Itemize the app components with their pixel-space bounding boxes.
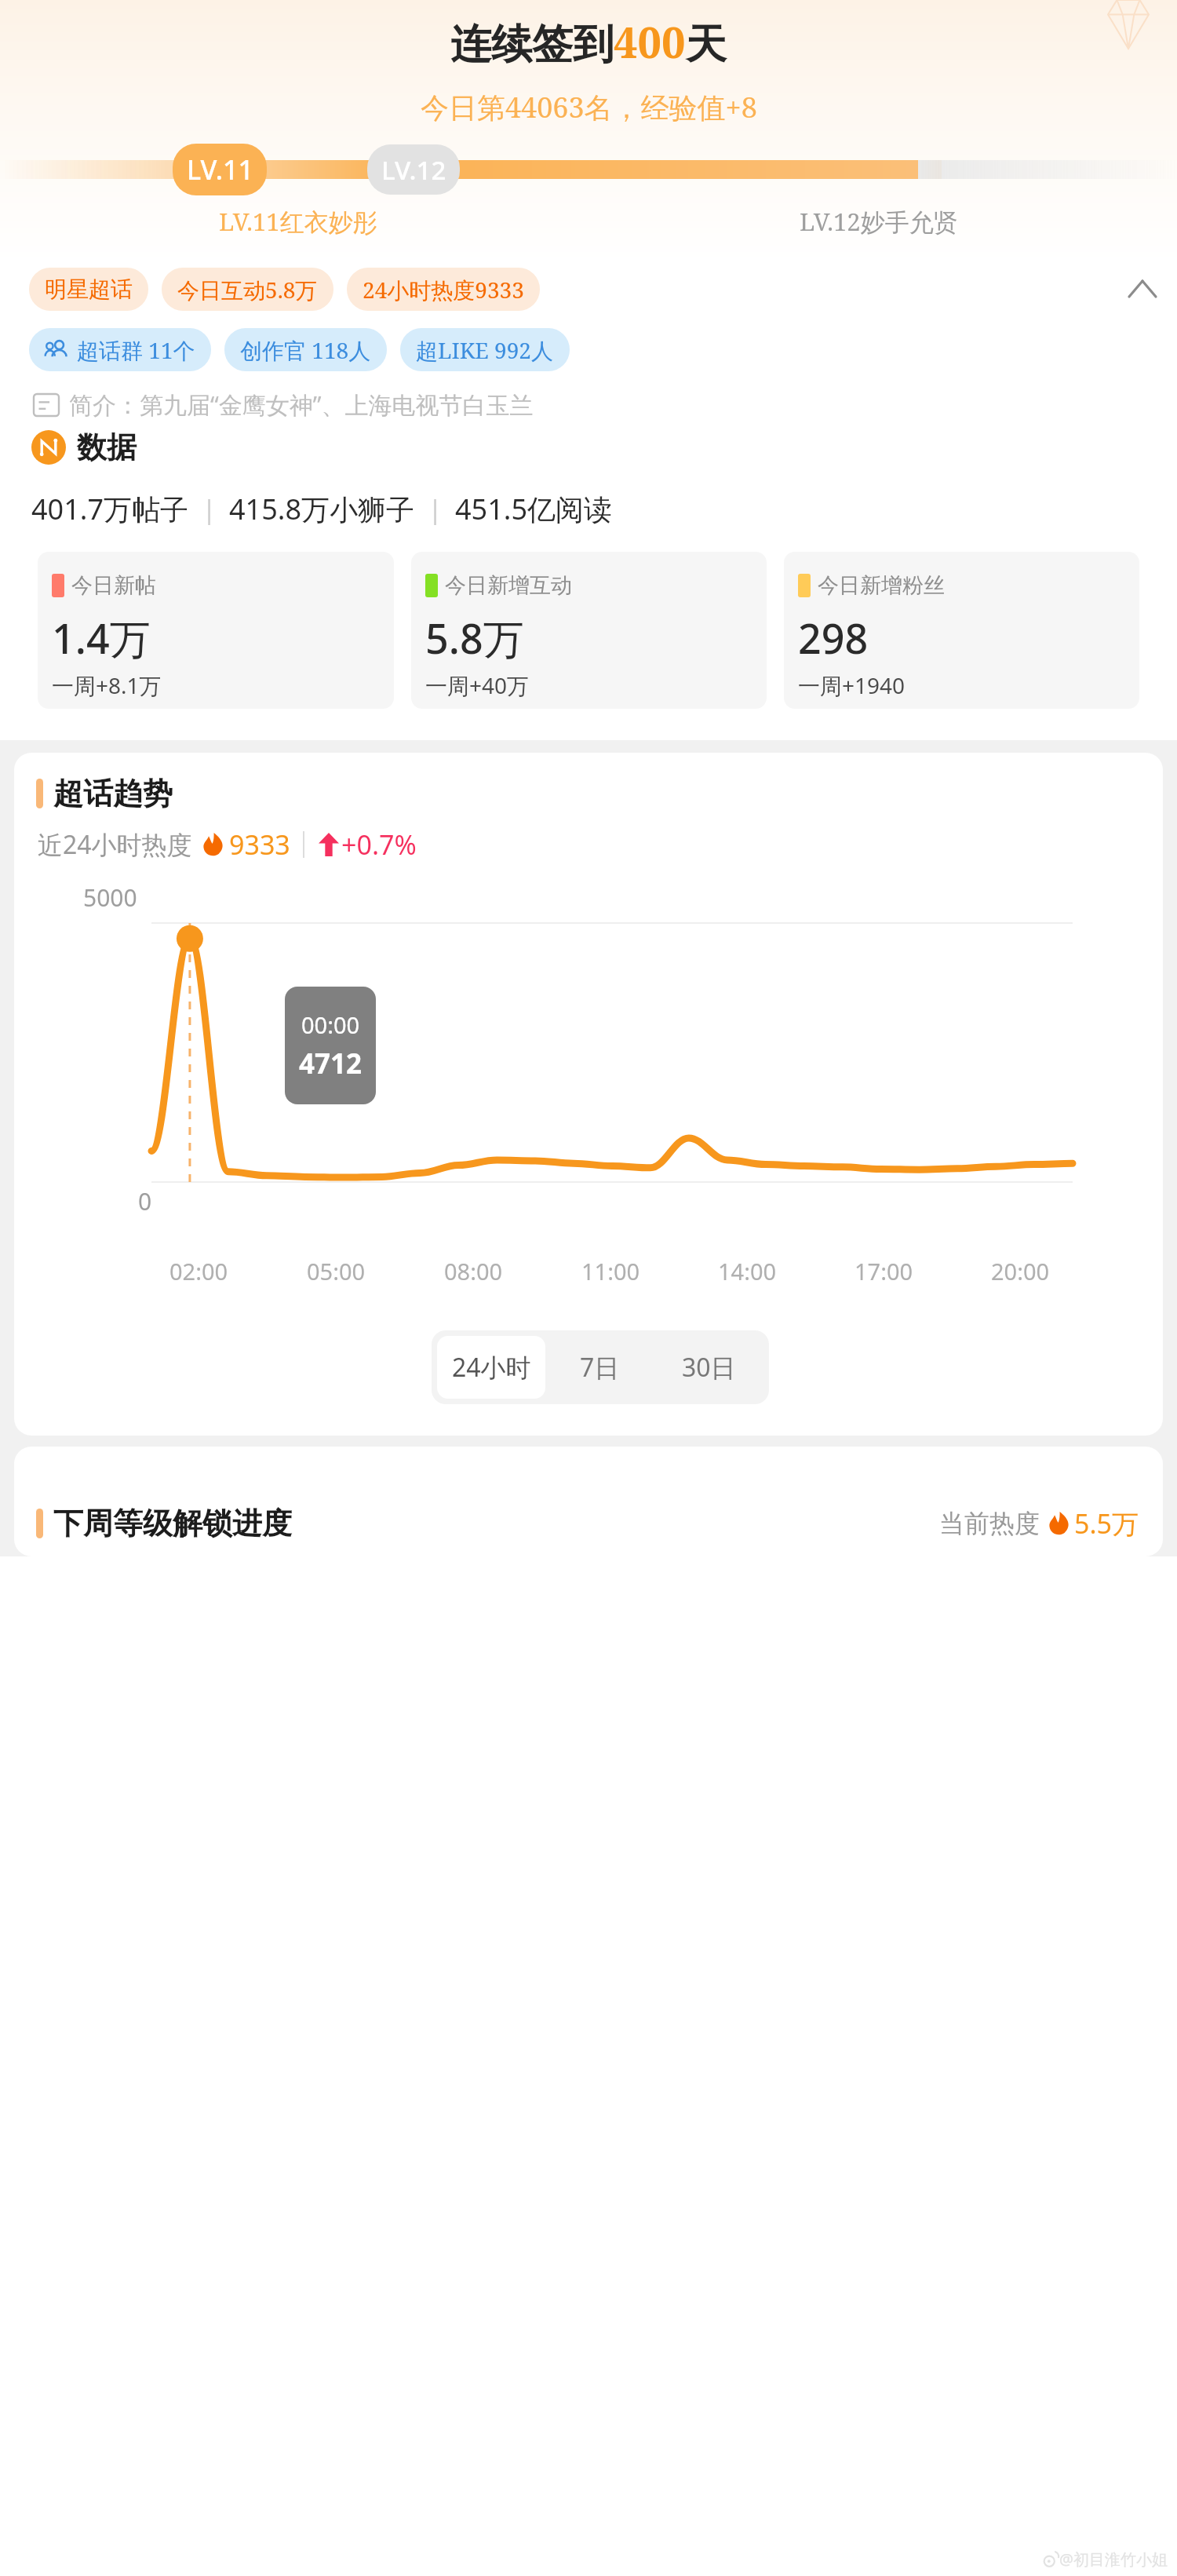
staticText: 数据 [77,429,137,466]
button[interactable]: 收起 [1119,265,1166,312]
staticText: 30日 [682,1350,736,1385]
staticText: 0 [138,1185,152,1217]
staticText: 明星超话 [45,275,133,303]
staticText: 创作官 118人 [240,335,371,365]
staticText: 451.5亿阅读 [455,490,613,528]
staticText: | [415,492,455,527]
button[interactable]: 明星超话 [29,268,148,311]
staticText: LV.11红衣妙彤 [219,205,377,238]
button[interactable]: 7日 [545,1336,654,1399]
staticText: 1.4万 [52,610,151,666]
staticText: 今日新增粉丝 [818,572,945,599]
staticText: 24小时热度9333 [363,275,524,305]
staticText: 一周+1940 [798,670,906,700]
staticText: 超话群 11个 [77,335,195,365]
staticText: 超LIKE 992人 [416,335,554,365]
staticText: 5.8万 [425,610,524,666]
staticText: LV.11 [187,151,253,188]
staticText: 415.8万小狮子 [229,490,415,528]
staticText: 5000 [83,881,137,914]
button[interactable]: LV.12 [367,144,460,195]
staticText: 一周+8.1万 [52,670,162,700]
staticText: 17:00 [855,1256,913,1286]
staticText: 05:00 [307,1256,366,1286]
staticText: 超话趋势 [53,775,173,812]
button[interactable]: 30日 [654,1336,763,1399]
staticText: 下周等级解锁进度 [53,1505,292,1542]
button[interactable]: 超话群 11个 [29,328,211,371]
button[interactable]: 超LIKE 992人 [400,328,570,371]
staticText: 7日 [580,1350,620,1385]
button[interactable]: 24小时 [437,1336,545,1399]
button[interactable]: 今日互动5.8万 [162,268,333,311]
staticText: 24小时 [452,1350,531,1385]
button[interactable]: 今日新增粉丝 [784,552,1139,709]
staticText: 401.7万帖子 [31,490,189,528]
button[interactable]: 创作官 118人 [224,328,387,371]
staticText: @初目淮竹小姐 [1059,2549,1168,2570]
staticText: 00:00 [301,1009,360,1040]
button[interactable]: 今日新帖 [38,552,394,709]
staticText: 近24小时热度 [38,827,192,862]
staticText: 298 [798,610,869,666]
staticText: 11:00 [581,1256,640,1286]
button[interactable]: 24小时热度9333 [347,268,540,311]
staticText: 400 [614,13,686,71]
staticText: 简介：第九届“金鹰女神”、上海电视节白玉兰 [69,389,534,421]
staticText: 08:00 [444,1256,503,1286]
staticText: 02:00 [169,1256,228,1286]
staticText: 20:00 [991,1256,1050,1286]
staticText: 4712 [299,1045,363,1082]
staticText: 5.5万 [1074,1505,1139,1542]
staticText: LV.12妙手允贤 [800,205,958,238]
staticText: 天 [686,19,727,71]
staticText: 今日互动5.8万 [177,275,318,305]
button[interactable]: LV.11 [173,144,267,195]
staticText: 一周+40万 [425,670,530,700]
staticText: 今日第44063名，经验值+8 [421,88,757,126]
staticText: | [189,492,229,527]
staticText: 当前热度 [939,1508,1040,1539]
button[interactable]: 今日新增互动 [411,552,767,709]
staticText: 连续签到 [450,19,614,71]
staticText: 9333 [229,826,290,863]
staticText: LV.12 [381,152,446,188]
staticText: 今日新帖 [71,572,156,599]
staticText: +0.7% [341,826,417,863]
staticText: 今日新增互动 [445,572,572,599]
staticText: 14:00 [718,1256,777,1286]
